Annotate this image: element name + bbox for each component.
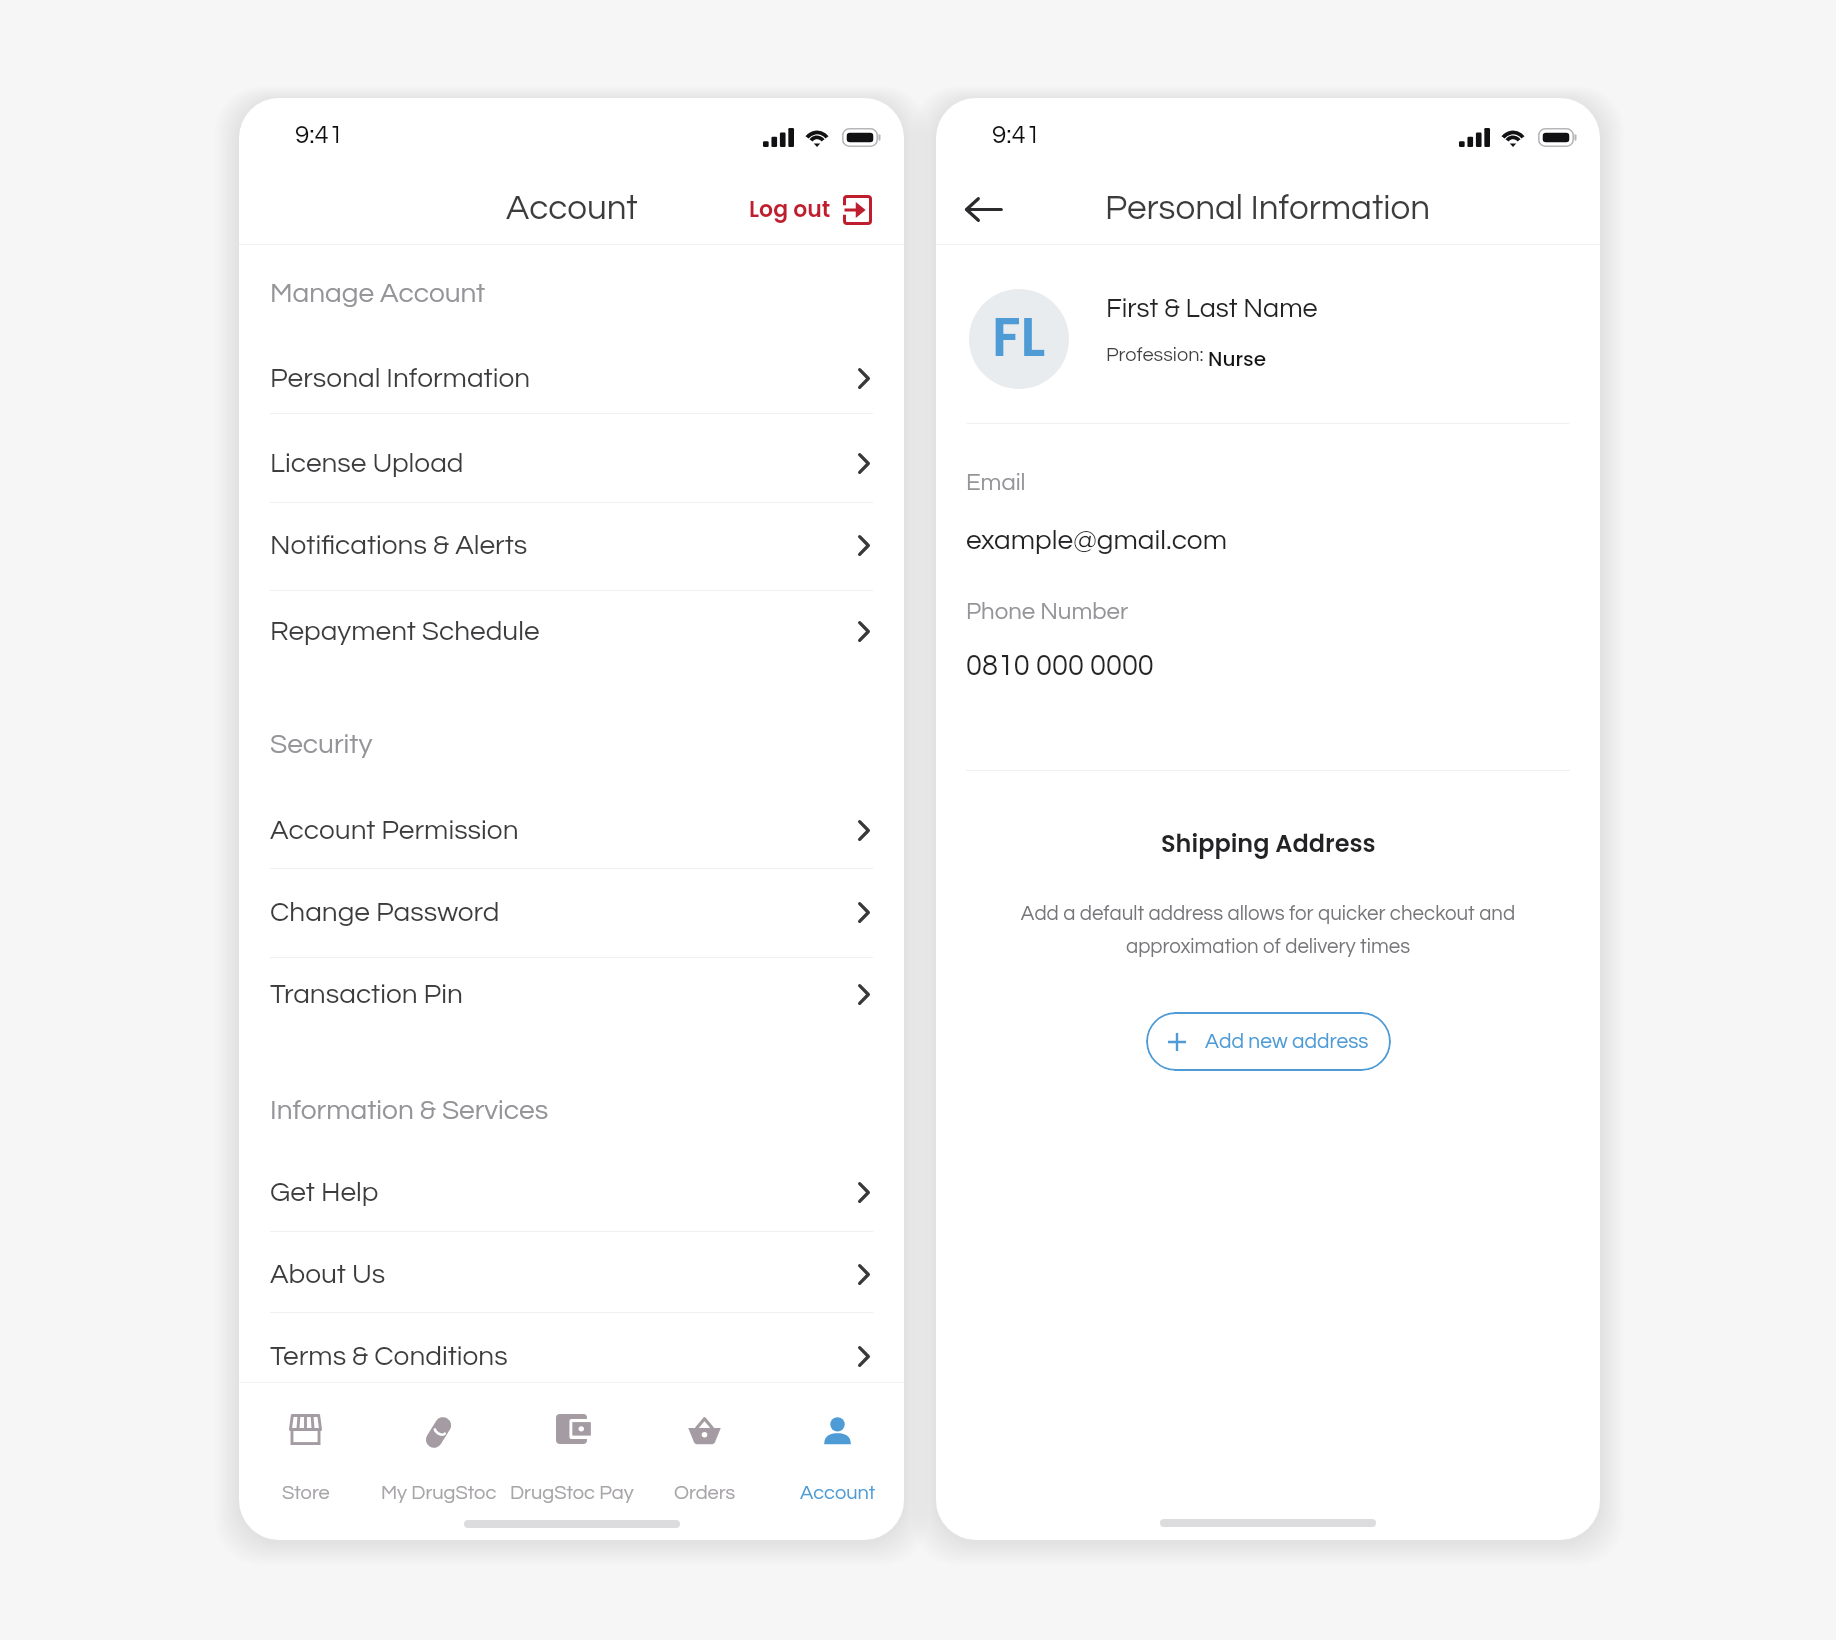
staticText: Transaction Pin (270, 980, 463, 1009)
other: Log out (843, 195, 872, 225)
staticText: Shipping Address (1161, 827, 1376, 861)
staticText: Account Permission (270, 816, 519, 845)
button[interactable]: Back (956, 182, 1010, 236)
button[interactable]: Get Help (239, 1163, 904, 1221)
staticText: Add new address (1205, 1031, 1369, 1053)
button[interactable]: License Upload (239, 434, 904, 492)
staticText: 9:41 (295, 122, 344, 149)
button[interactable]: About Us (239, 1245, 904, 1303)
staticText: Manage Account (270, 279, 486, 308)
staticText: Account (506, 190, 638, 226)
staticText: FL (992, 299, 1046, 375)
staticText: Information & Services (270, 1096, 549, 1125)
button[interactable]: My DrugStoc (372, 1383, 505, 1502)
button[interactable]: Orders (638, 1383, 771, 1502)
staticText: Personal Information (270, 364, 531, 393)
staticText: Profession: (1106, 345, 1208, 366)
staticText: DrugStoc Pay (510, 1483, 634, 1504)
staticText: Orders (674, 1483, 736, 1504)
staticText: Log out (749, 194, 831, 225)
staticText: example@gmail.com (966, 526, 1227, 555)
staticText: Get Help (270, 1178, 379, 1207)
staticText: Account (800, 1483, 876, 1504)
staticText: License Upload (270, 449, 464, 478)
button[interactable]: Account (771, 1383, 904, 1502)
staticText: Add a default address allows for quicker… (972, 903, 1564, 958)
staticText: Change Password (270, 898, 500, 927)
button[interactable]: Transaction Pin (239, 965, 904, 1023)
button[interactable]: Notifications & Alerts (239, 516, 904, 574)
staticText: Terms & Conditions (270, 1342, 508, 1371)
staticText: Security (270, 730, 373, 759)
staticText: Nurse (1208, 345, 1267, 373)
staticText: Store (282, 1483, 330, 1504)
staticText: Email (966, 470, 1026, 495)
staticText: 9:41 (992, 122, 1041, 149)
button[interactable]: Store (239, 1383, 372, 1502)
staticText: Notifications & Alerts (270, 531, 528, 560)
staticText: 0810 000 0000 (966, 651, 1154, 681)
staticText: Personal Information (1105, 190, 1431, 226)
staticText: About Us (270, 1260, 386, 1289)
button[interactable]: Change Password (239, 883, 904, 941)
button[interactable]: Personal Information (239, 349, 904, 407)
button[interactable]: DrugStoc Pay (505, 1383, 638, 1502)
staticText: My DrugStoc (381, 1483, 497, 1504)
button[interactable]: Account Permission (239, 801, 904, 859)
staticText: Repayment Schedule (270, 617, 540, 646)
button[interactable]: Log out (743, 186, 878, 233)
button[interactable]: Add new address (1146, 1012, 1391, 1071)
button[interactable]: Terms & Conditions (239, 1327, 904, 1385)
staticText: First & Last Name (1106, 295, 1318, 323)
staticText: Phone Number (966, 599, 1129, 624)
button[interactable]: Repayment Schedule (239, 602, 904, 660)
